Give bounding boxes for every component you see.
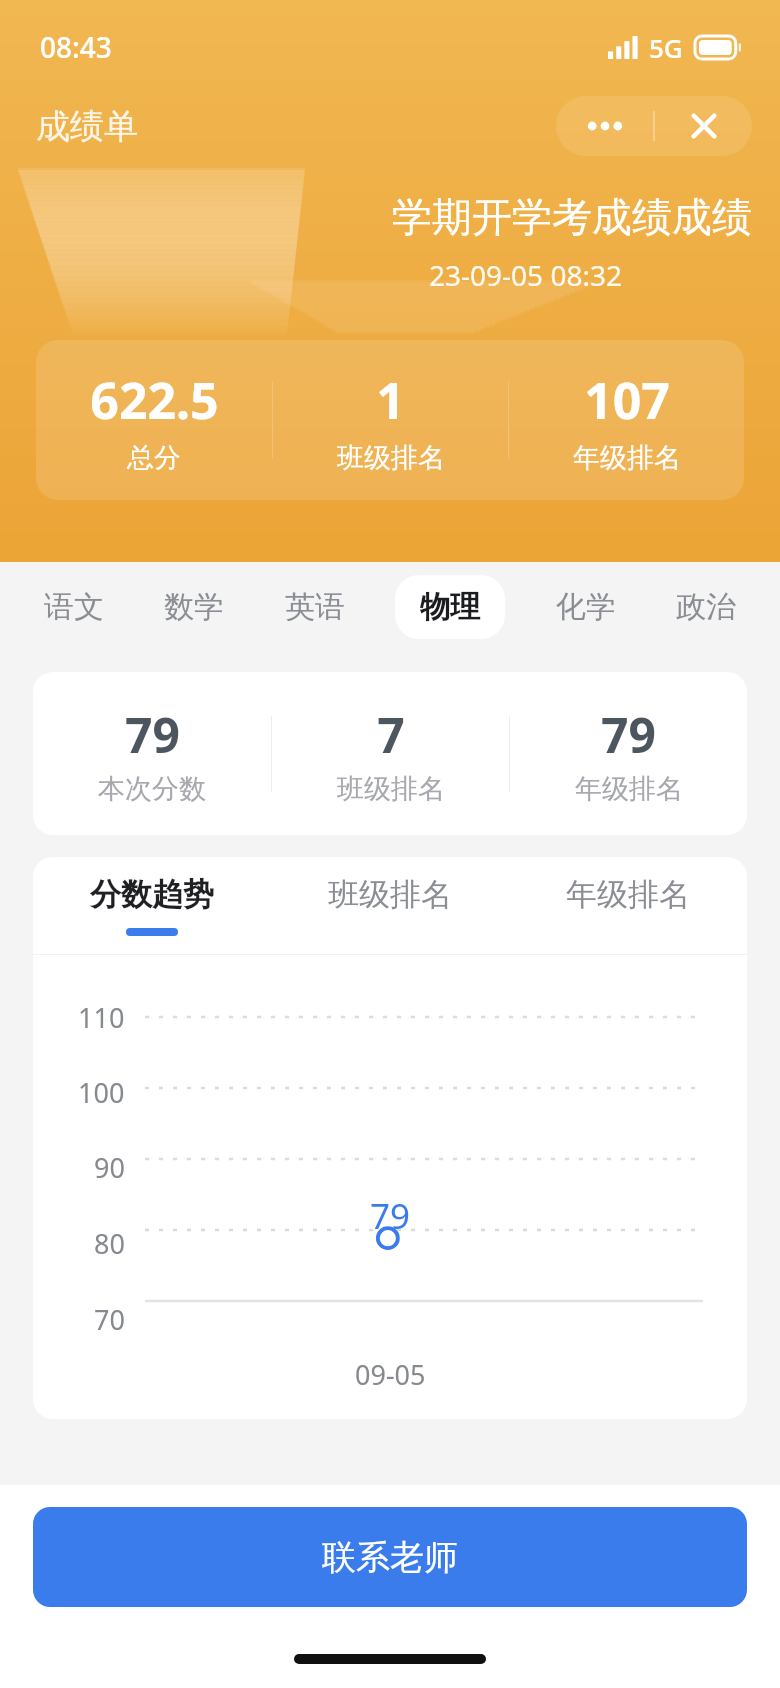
staticText: 成绩单: [36, 105, 138, 148]
staticText: 90: [94, 1149, 125, 1186]
staticText: 79: [125, 702, 180, 767]
staticText: 学期开学考成绩成绩: [392, 192, 752, 242]
staticText: 总分: [127, 441, 181, 475]
staticText: 08:43: [40, 28, 112, 66]
staticText: 年级排名: [575, 772, 683, 806]
staticText: 化学: [556, 588, 616, 626]
staticText: 7: [377, 702, 405, 767]
staticText: 80: [94, 1225, 125, 1262]
staticText: 班级排名: [328, 875, 452, 914]
staticText: 联系老师: [322, 1536, 458, 1579]
staticText: 1: [376, 366, 405, 434]
button[interactable]: 年级排名: [509, 857, 747, 954]
staticText: 物理: [420, 588, 480, 626]
staticText: 107: [584, 366, 670, 434]
staticText: 语文: [44, 588, 104, 626]
button[interactable]: 79: [510, 702, 747, 806]
staticText: 09-05: [355, 1356, 426, 1393]
button[interactable]: 79: [33, 702, 271, 806]
button[interactable]: 政治: [666, 575, 746, 639]
button[interactable]: 数学: [154, 575, 234, 639]
staticText: 本次分数: [98, 772, 206, 806]
button[interactable]: 化学: [546, 575, 626, 639]
staticText: 79: [601, 702, 656, 767]
button[interactable]: 622.5: [36, 366, 272, 475]
staticText: 分数趋势: [90, 875, 214, 914]
button[interactable]: 联系老师: [33, 1507, 747, 1607]
staticText: 23-09-05 08:32: [429, 256, 622, 294]
button[interactable]: 英语: [275, 575, 355, 639]
staticText: 班级排名: [337, 441, 445, 475]
staticText: 班级排名: [337, 772, 445, 806]
button[interactable]: 分数趋势: [33, 857, 271, 954]
staticText: 英语: [285, 588, 345, 626]
button[interactable]: 1: [273, 366, 508, 475]
button[interactable]: More options: [556, 96, 653, 156]
button[interactable]: 7: [272, 702, 509, 806]
button[interactable]: 107: [509, 366, 744, 475]
button[interactable]: More options: [556, 96, 752, 156]
button[interactable]: Close: [655, 96, 752, 156]
staticText: 100: [78, 1074, 125, 1111]
staticText: 年级排名: [573, 441, 681, 475]
staticText: 110: [78, 999, 125, 1036]
staticText: 年级排名: [566, 875, 690, 914]
button[interactable]: 班级排名: [271, 857, 509, 954]
button[interactable]: 物理: [395, 575, 505, 639]
staticText: 5G: [649, 30, 683, 65]
staticText: 政治: [676, 588, 736, 626]
staticText: 79: [370, 1192, 411, 1234]
staticText: 数学: [164, 588, 224, 626]
staticText: 70: [94, 1301, 125, 1338]
button[interactable]: 语文: [34, 575, 114, 639]
staticText: 622.5: [90, 366, 219, 434]
